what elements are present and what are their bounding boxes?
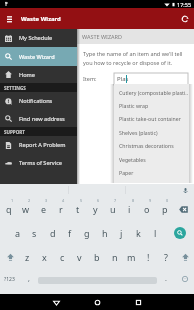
button[interactable]: s: [26, 221, 43, 245]
staticText: Report A Problem: [19, 141, 66, 149]
staticText: Find new address: [19, 115, 65, 123]
staticText: r: [59, 203, 63, 215]
button[interactable]: .: [158, 269, 173, 289]
button[interactable]: w: [17, 197, 34, 221]
button[interactable]: q: [0, 197, 17, 221]
button[interactable]: n: [106, 245, 123, 269]
button[interactable]: Home: [0, 66, 77, 83]
button[interactable]: Shelves (plastic): [114, 126, 189, 139]
button[interactable]: Open navigation drawer: [3, 13, 15, 25]
button[interactable]: Refresh: [179, 13, 191, 25]
button[interactable]: j: [113, 221, 130, 245]
button[interactable]: Terms of Service: [0, 154, 77, 172]
staticText: !: [147, 251, 150, 263]
staticText: d: [50, 227, 56, 239]
button[interactable]: Emoji: [175, 269, 194, 289]
staticText: Paper: [119, 169, 134, 176]
staticText: 8: [132, 198, 135, 203]
button[interactable]: a: [9, 221, 26, 245]
staticText: Waste Wizard: [21, 15, 61, 23]
button[interactable]: p: [156, 197, 173, 221]
staticText: b: [94, 251, 100, 263]
staticText: i: [128, 203, 131, 215]
staticText: 0: [166, 198, 169, 203]
button[interactable]: k: [130, 221, 147, 245]
staticText: My Schedule: [19, 34, 53, 42]
staticText: f: [68, 227, 72, 239]
button[interactable]: x: [36, 245, 53, 269]
button[interactable]: Recent apps: [131, 295, 145, 309]
button[interactable]: m: [123, 245, 140, 269]
button[interactable]: My Schedule: [0, 29, 77, 47]
staticText: k: [136, 227, 141, 239]
staticText: y: [93, 203, 98, 215]
button[interactable]: !: [140, 245, 157, 269]
button[interactable]: t: [69, 197, 86, 221]
button[interactable]: Back: [49, 295, 63, 309]
staticText: t: [76, 203, 80, 215]
staticText: j: [120, 227, 123, 239]
button[interactable]: v: [71, 245, 88, 269]
button[interactable]: ,: [21, 269, 36, 289]
staticText: Plas: [117, 75, 129, 83]
button[interactable]: e: [35, 197, 52, 221]
button[interactable]: Home: [90, 295, 104, 309]
staticText: ?123: [4, 276, 15, 283]
staticText: ?: [164, 251, 168, 263]
staticText: h: [102, 227, 108, 239]
button[interactable]: o: [138, 197, 155, 221]
staticText: Item:: [83, 75, 97, 82]
button[interactable]: Plas: [114, 73, 188, 85]
staticText: u: [110, 203, 116, 215]
button[interactable]: Waste Wizard: [0, 47, 77, 66]
staticText: 2: [28, 198, 31, 203]
staticText: Vegetables: [119, 156, 146, 163]
button[interactable]: Search: [174, 227, 186, 239]
button[interactable]: Backspace: [173, 197, 194, 221]
button[interactable]: f: [61, 221, 78, 245]
button[interactable]: z: [19, 245, 36, 269]
button[interactable]: d: [44, 221, 61, 245]
button[interactable]: Notifications: [0, 92, 77, 110]
button[interactable]: Cutlery (compostable plasti..: [114, 86, 189, 99]
button[interactable]: ?123: [0, 269, 19, 289]
button[interactable]: Plastic take-out container: [114, 112, 189, 125]
button[interactable]: r: [52, 197, 69, 221]
button[interactable]: Find new address: [0, 110, 77, 127]
button[interactable]: g: [78, 221, 95, 245]
staticText: s: [32, 227, 37, 239]
staticText: WASTE WIZARD: [82, 33, 123, 40]
staticText: e: [41, 203, 47, 215]
staticText: SETTINGS: [4, 85, 26, 91]
button[interactable]: Paper: [114, 166, 189, 179]
button[interactable]: y: [87, 197, 104, 221]
button[interactable]: ?: [157, 245, 174, 269]
staticText: x: [42, 251, 47, 263]
staticText: 1: [11, 198, 14, 203]
button[interactable]: Vegetables: [114, 153, 189, 166]
button[interactable]: Report A Problem: [0, 136, 77, 154]
button[interactable]: l: [147, 221, 164, 245]
button[interactable]: u: [104, 197, 121, 221]
staticText: g: [84, 227, 90, 239]
button[interactable]: h: [96, 221, 113, 245]
staticText: 3: [45, 198, 48, 203]
button[interactable]: Shift: [1, 245, 19, 269]
staticText: ,: [28, 274, 30, 284]
button[interactable]: i: [121, 197, 138, 221]
staticText: Terms of Service: [19, 159, 62, 167]
staticText: a: [15, 227, 21, 239]
staticText: 5: [80, 198, 83, 203]
button[interactable]: Voice input: [180, 185, 191, 196]
button[interactable]: Christmas decorations: [114, 139, 189, 152]
button[interactable]: c: [54, 245, 71, 269]
staticText: w: [22, 203, 30, 215]
button[interactable]: Shift: [176, 245, 194, 269]
button[interactable]: Plastic wrap: [114, 99, 189, 112]
button[interactable]: b: [88, 245, 105, 269]
staticText: 9: [149, 198, 152, 203]
staticText: 4: [62, 198, 65, 203]
staticText: c: [60, 251, 65, 263]
staticText: Notifications: [19, 97, 53, 105]
